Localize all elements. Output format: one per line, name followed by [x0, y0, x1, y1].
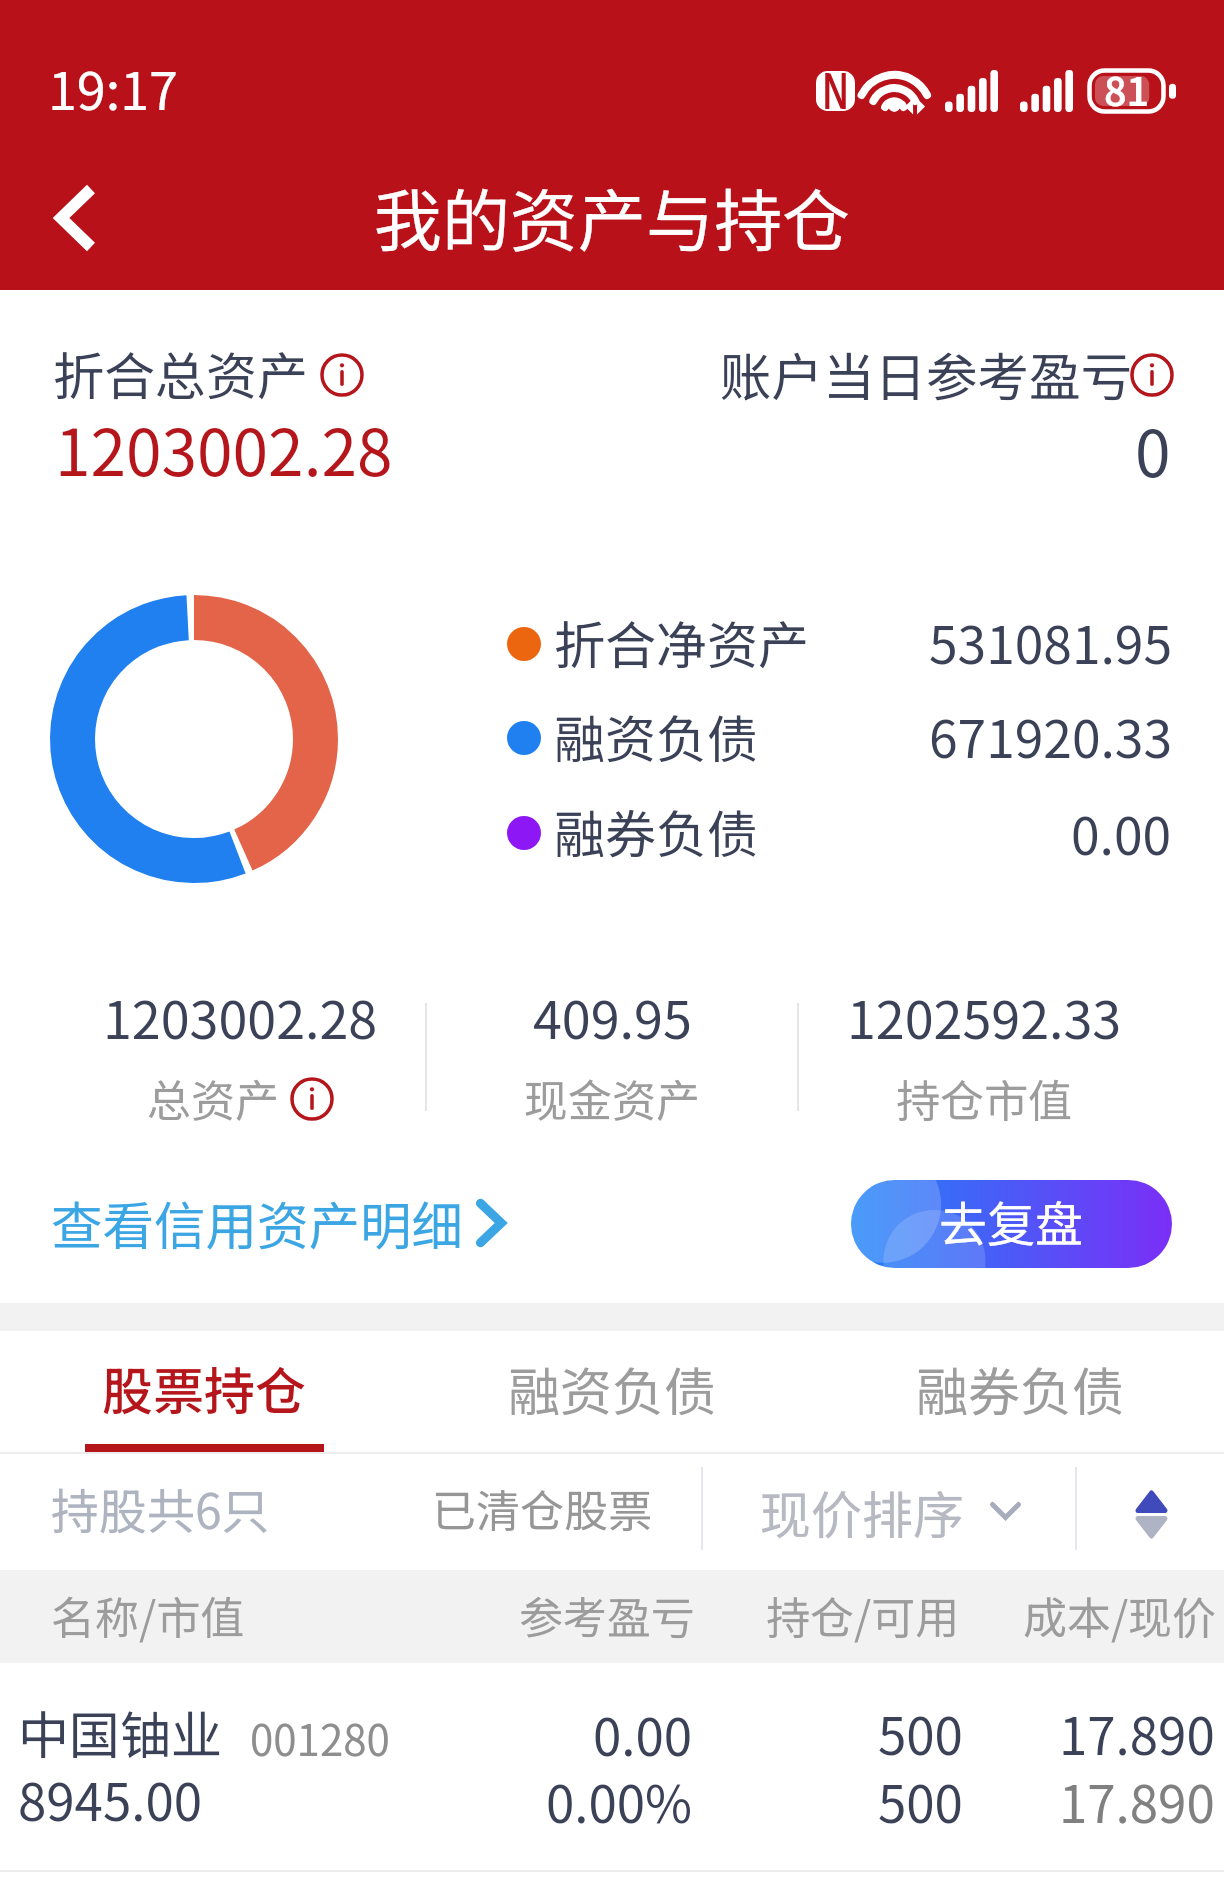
button[interactable]	[0, 1663, 1224, 1879]
staticText: 17.890	[1059, 1696, 1215, 1770]
button[interactable]: 去复盘	[851, 1180, 1172, 1268]
staticText: 409.95	[533, 979, 692, 1054]
staticText: 500	[878, 1696, 963, 1770]
staticText: 0.00	[593, 1697, 693, 1771]
staticText: 融资负债	[554, 699, 759, 773]
staticText: 1203002.28	[103, 979, 378, 1054]
staticText: 500	[878, 1764, 963, 1838]
button[interactable]: 持股共6只	[0, 1455, 340, 1565]
staticText: 融券负债	[554, 794, 759, 868]
button[interactable]: 现价排序	[712, 1455, 1072, 1565]
staticText: 17.890	[1059, 1764, 1215, 1838]
staticText: 现价排序	[760, 1475, 965, 1549]
button[interactable]: 已清仓股票	[400, 1455, 690, 1565]
staticText: 1202592.33	[847, 979, 1122, 1054]
button[interactable]: 股票持仓	[0, 1331, 408, 1453]
staticText: 1203002.28	[55, 402, 393, 495]
staticText: 0.00%	[546, 1764, 693, 1838]
staticText: 531081.95	[929, 604, 1172, 679]
staticText: 19:17	[48, 50, 178, 125]
staticText: 总资产	[147, 1066, 279, 1130]
staticText: 融券负债	[916, 1351, 1125, 1426]
staticText: 折合总资产	[53, 336, 309, 410]
staticText: 参考盈亏	[519, 1583, 695, 1647]
staticText: 名称/市值	[51, 1583, 245, 1647]
staticText: 股票持仓	[102, 1351, 307, 1425]
staticText: 我的资产与持仓	[374, 167, 851, 265]
staticText: 001280	[250, 1707, 390, 1768]
button[interactable]: 融资负债	[408, 1331, 816, 1453]
staticText: 持仓/可用	[766, 1583, 960, 1647]
button[interactable]: 查看信用资产明细	[51, 1185, 507, 1260]
staticText: 融资负债	[508, 1351, 717, 1426]
staticText: 0.00	[1071, 795, 1172, 870]
staticText: 查看信用资产明细	[51, 1185, 464, 1260]
button[interactable]: Sort order	[1110, 1476, 1192, 1552]
staticText: 成本/现价	[1023, 1583, 1217, 1647]
button[interactable]: Back	[21, 163, 131, 273]
staticText: 去复盘	[939, 1186, 1084, 1256]
staticText: 折合净资产	[554, 605, 810, 679]
staticText: 已清仓股票	[432, 1476, 652, 1540]
staticText: 账户当日参考盈亏	[720, 336, 1133, 411]
staticText: 现金资产	[524, 1066, 700, 1130]
staticText: 持仓市值	[896, 1066, 1072, 1130]
staticText: 81	[1104, 61, 1150, 117]
button[interactable]: 融券负债	[816, 1331, 1224, 1453]
staticText: 671920.33	[929, 698, 1172, 773]
staticText: 中国铀业	[18, 1695, 223, 1769]
staticText: 0	[1135, 403, 1171, 496]
staticText: 8945.00	[18, 1762, 203, 1836]
staticText: 持股共6只	[51, 1473, 270, 1543]
